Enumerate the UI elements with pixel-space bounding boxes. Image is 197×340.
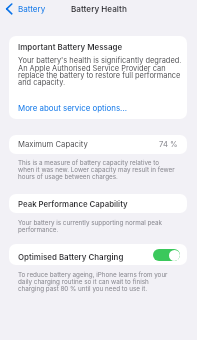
button[interactable]: More about service options... xyxy=(18,103,127,113)
button[interactable]: Battery xyxy=(2,0,50,18)
staticText: Important Battery Message xyxy=(18,42,123,52)
staticText: This is a measure of battery capacity re… xyxy=(18,159,176,180)
staticText: Your battery's health is significantly d… xyxy=(18,56,186,87)
button[interactable]: Peak Performance Capability xyxy=(9,194,187,213)
button[interactable]: Maximum Capacity xyxy=(9,135,187,154)
staticText: To reduce battery ageing, iPhone learns … xyxy=(18,271,176,292)
button[interactable]: Optimised Battery Charging, on xyxy=(153,249,180,261)
staticText: 74 % xyxy=(159,140,178,149)
staticText: Battery xyxy=(18,4,46,14)
staticText: Battery Health xyxy=(71,4,127,14)
staticText: Peak Performance Capability xyxy=(18,199,128,208)
staticText: Maximum Capacity xyxy=(18,140,88,149)
staticText: Your battery is currently supporting nor… xyxy=(18,219,176,233)
staticText: Optimised Battery Charging xyxy=(18,252,124,262)
